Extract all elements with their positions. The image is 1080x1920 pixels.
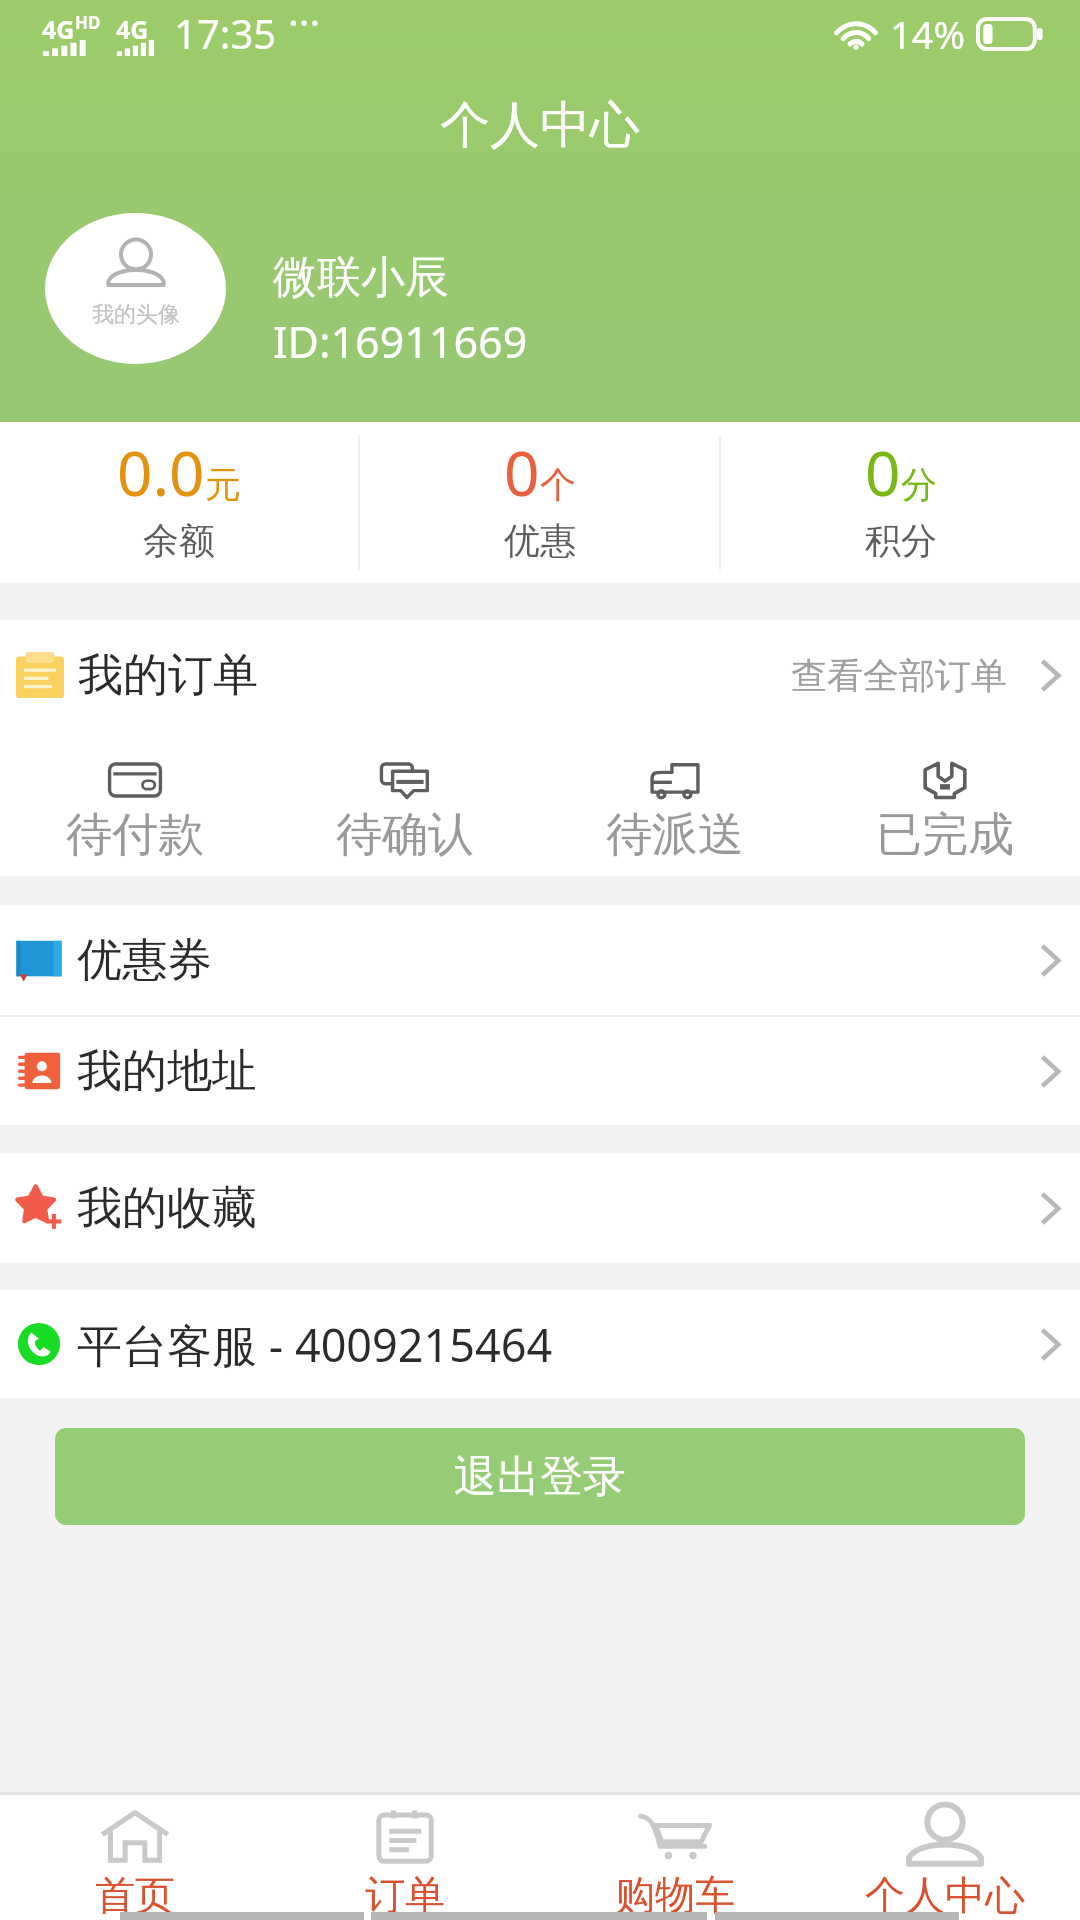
staticText: 分 [901, 462, 937, 507]
button[interactable]: 待确认 [270, 730, 540, 876]
staticText: 待付款 [66, 806, 204, 864]
button[interactable]: 0.0 [0, 422, 358, 583]
button[interactable]: 个人中心 [810, 1795, 1080, 1920]
staticText: 14% [890, 8, 966, 60]
button[interactable]: 首页 [0, 1795, 270, 1920]
staticText: 待确认 [336, 806, 474, 864]
staticText: 优惠券 [77, 932, 212, 989]
staticText: HD [75, 11, 101, 34]
staticText: 17:35 [174, 6, 277, 60]
button[interactable]: 优惠券 [0, 905, 1080, 1015]
staticText: 首页 [95, 1870, 175, 1920]
other: My avatar [45, 213, 226, 364]
staticText: 4G [42, 12, 75, 46]
button[interactable]: 我的收藏 [0, 1153, 1080, 1263]
staticText: 元 [205, 462, 241, 507]
staticText: 购物车 [615, 1870, 735, 1920]
button[interactable]: 订单 [270, 1795, 540, 1920]
button[interactable]: My avatar [0, 196, 1080, 386]
staticText: 0 [865, 430, 901, 514]
button[interactable]: 0 [360, 422, 719, 583]
button[interactable]: 我的订单 [0, 620, 1080, 730]
staticText: 积分 [865, 518, 937, 563]
staticText: 我的头像 [92, 301, 180, 329]
staticText: ··· [288, 0, 321, 48]
staticText: ID:16911669 [273, 312, 528, 371]
staticText: 4G [116, 12, 149, 46]
staticText: 优惠 [504, 518, 576, 563]
staticText: 我的订单 [78, 647, 258, 704]
staticText: 平台客服 - 4009215464 [77, 1314, 553, 1375]
staticText: 我的收藏 [77, 1180, 257, 1237]
staticText: 退出登录 [454, 1450, 626, 1504]
staticText: 0.0 [117, 430, 205, 514]
staticText: 待派送 [606, 806, 744, 864]
staticText: 余额 [143, 518, 215, 563]
button[interactable]: 已完成 [810, 730, 1080, 876]
button[interactable]: 平台客服 - 4009215464 [0, 1290, 1080, 1398]
staticText: 个人中心 [865, 1870, 1025, 1920]
staticText: 0 [504, 430, 540, 514]
staticText: 微联小辰 [273, 250, 449, 305]
staticText: 个人中心 [440, 94, 640, 157]
button[interactable]: 0 [721, 422, 1080, 583]
staticText: 查看全部订单 [791, 653, 1007, 698]
staticText: 个 [540, 462, 576, 507]
staticText: 已完成 [876, 806, 1014, 864]
button[interactable]: 待派送 [540, 730, 810, 876]
button[interactable]: 退出登录 [55, 1428, 1025, 1525]
staticText: 我的地址 [77, 1043, 257, 1100]
button[interactable]: 待付款 [0, 730, 270, 876]
staticText: 订单 [365, 1870, 445, 1920]
button[interactable]: 我的地址 [0, 1017, 1080, 1125]
button[interactable]: 购物车 [540, 1795, 810, 1920]
